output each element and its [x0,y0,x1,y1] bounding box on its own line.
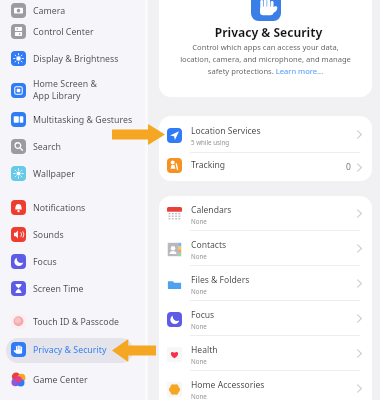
button[interactable] [6,338,133,363]
staticText: Health [191,344,218,356]
staticText: None [191,287,207,295]
staticText: None [191,392,207,400]
staticText: Wallpaper [33,168,75,180]
button[interactable]: Health [159,336,372,370]
staticText: Privacy & Security [162,24,375,40]
staticText: None [191,217,207,225]
button[interactable]: Location Services [159,116,372,152]
staticText: Camera [33,5,66,17]
staticText: 0 [346,161,351,173]
staticText: Multitasking & Gestures [33,114,133,126]
button[interactable] [6,20,133,45]
staticText: Home Accessories [191,379,265,391]
button[interactable] [6,196,133,221]
button[interactable] [6,223,133,248]
button[interactable] [6,75,133,107]
staticText: Home Screen & App Library [33,78,97,102]
button[interactable]: Tracking [159,153,372,181]
button[interactable]: Files & Folders [159,266,372,300]
staticText: Focus [191,309,215,321]
button[interactable] [6,0,133,24]
staticText: None [191,357,207,365]
staticText: Focus [33,256,57,268]
button[interactable] [6,108,133,133]
staticText: 5 while using [191,138,230,146]
staticText: Search [33,141,61,153]
staticText: None [191,322,207,330]
button[interactable]: Focus [159,301,372,335]
button[interactable]: Contacts [159,231,372,265]
staticText: Sounds [33,229,64,241]
staticText: Control Center [33,26,94,38]
staticText: Notifications [33,202,86,214]
staticText: Location Services [191,125,261,137]
staticText: Display & Brightness [33,53,119,65]
button[interactable] [6,47,133,72]
staticText: Screen Time [33,283,84,295]
staticText: Touch ID & Passcode [33,316,119,328]
staticText: Control which apps can access your data,… [179,42,352,76]
staticText: Files & Folders [191,274,250,286]
staticText: Game Center [33,374,88,386]
button[interactable]: Calendars [159,196,372,230]
staticText: Privacy & Security [33,344,107,356]
button[interactable] [6,135,133,160]
staticText: Contacts [191,239,227,251]
other: Pointer to Location Services [112,124,165,145]
button[interactable] [6,162,133,187]
staticText: Calendars [191,204,232,216]
button[interactable] [6,250,133,275]
other: Pointer to Privacy and Security [112,339,156,362]
button[interactable] [6,310,133,335]
button[interactable] [6,368,133,393]
staticText: Tracking [191,159,226,171]
staticText: None [191,252,207,260]
button[interactable] [6,277,133,302]
button[interactable]: Home Accessories [159,371,372,400]
